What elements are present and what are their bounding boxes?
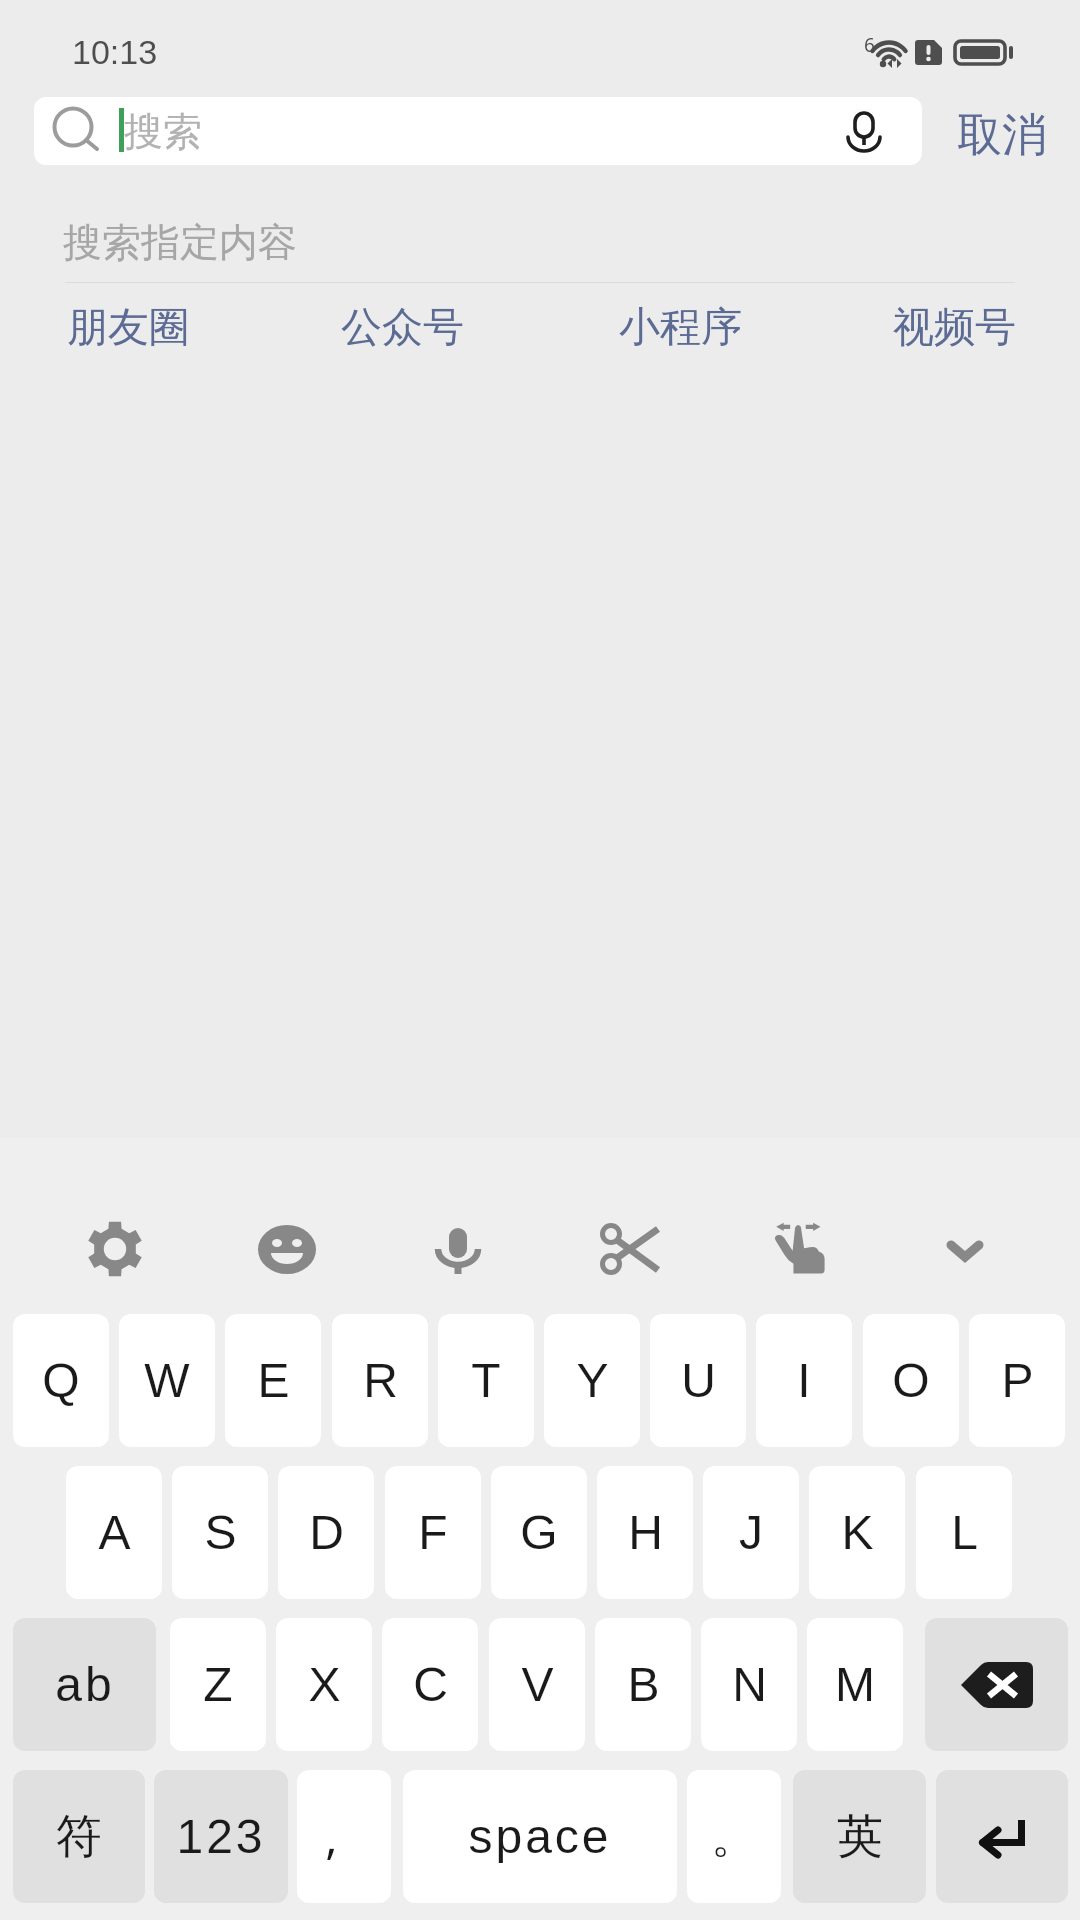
button[interactable]: Enter	[936, 1770, 1068, 1903]
button[interactable]: P	[969, 1314, 1065, 1447]
button[interactable]: C	[382, 1618, 478, 1751]
staticText: 123	[176, 1810, 266, 1864]
staticText: J	[739, 1506, 763, 1560]
button[interactable]: N	[701, 1618, 797, 1751]
staticText: S	[204, 1506, 237, 1560]
staticText: A	[98, 1506, 131, 1560]
button[interactable]: F	[385, 1466, 481, 1599]
button[interactable]: 视频号	[864, 296, 1044, 360]
staticText: G	[520, 1506, 558, 1560]
staticText: 朋友圈	[67, 302, 190, 354]
button[interactable]: B	[595, 1618, 691, 1751]
staticText: V	[521, 1658, 554, 1712]
button[interactable]: Y	[544, 1314, 640, 1447]
staticText: Q	[42, 1354, 80, 1408]
staticText: 6	[864, 32, 875, 58]
staticText: K	[841, 1506, 874, 1560]
button[interactable]: K	[809, 1466, 905, 1599]
staticText: B	[627, 1658, 660, 1712]
button[interactable]: W	[119, 1314, 215, 1447]
staticText: ab	[55, 1658, 115, 1712]
button[interactable]: Q	[13, 1314, 109, 1447]
staticText: O	[892, 1354, 930, 1408]
button[interactable]: ab	[13, 1618, 156, 1751]
button[interactable]: A	[66, 1466, 162, 1599]
button[interactable]: D	[278, 1466, 374, 1599]
staticText: Z	[203, 1658, 233, 1712]
button[interactable]: O	[863, 1314, 959, 1447]
staticText: W	[144, 1354, 190, 1408]
staticText: 符	[56, 1808, 102, 1866]
staticText: M	[835, 1658, 875, 1712]
staticText: 搜索指定内容	[63, 218, 297, 267]
other: Delete	[960, 1662, 1033, 1708]
staticText: E	[257, 1354, 290, 1408]
button[interactable]: space	[403, 1770, 677, 1903]
staticText: 。	[711, 1808, 757, 1866]
button[interactable]: 朋友圈	[38, 296, 218, 360]
staticText: D	[309, 1506, 344, 1560]
staticText: F	[418, 1506, 448, 1560]
staticText: X	[308, 1658, 341, 1712]
button[interactable]: 小程序	[590, 296, 770, 360]
staticText: space	[468, 1810, 612, 1864]
button[interactable]: E	[225, 1314, 321, 1447]
staticText: 10:13	[72, 33, 158, 71]
staticText: Y	[576, 1354, 609, 1408]
button[interactable]: X	[276, 1618, 372, 1751]
button[interactable]: R	[332, 1314, 428, 1447]
staticText: N	[732, 1658, 767, 1712]
button[interactable]: 123	[154, 1770, 288, 1903]
staticText: L	[951, 1506, 978, 1560]
button[interactable]: V	[489, 1618, 585, 1751]
staticText: ,	[325, 1805, 338, 1868]
button[interactable]: S	[172, 1466, 268, 1599]
staticText: T	[471, 1354, 501, 1408]
button[interactable]: Settings	[67, 1201, 163, 1297]
button[interactable]: Clipboard	[581, 1201, 677, 1297]
staticText: C	[413, 1658, 448, 1712]
button[interactable]: Handwriting	[752, 1201, 848, 1297]
button[interactable]: G	[491, 1466, 587, 1599]
button[interactable]: L	[916, 1466, 1012, 1599]
staticText: U	[681, 1354, 716, 1408]
staticText: 视频号	[893, 302, 1016, 354]
button[interactable]: 取消	[957, 107, 1047, 164]
staticText: 小程序	[619, 302, 742, 354]
button[interactable]: Delete	[925, 1618, 1068, 1751]
button[interactable]: M	[807, 1618, 903, 1751]
button[interactable]: 符	[13, 1770, 145, 1903]
staticText: H	[628, 1506, 663, 1560]
button[interactable]: T	[438, 1314, 534, 1447]
staticText: 公众号	[341, 302, 464, 354]
staticText: I	[797, 1354, 811, 1408]
button[interactable]: I	[756, 1314, 852, 1447]
staticText: P	[1001, 1354, 1034, 1408]
button[interactable]: 英	[793, 1770, 926, 1903]
button[interactable]: U	[650, 1314, 746, 1447]
button[interactable]: 搜索	[34, 97, 922, 165]
button[interactable]: Emoji	[239, 1201, 335, 1297]
button[interactable]: 公众号	[312, 296, 492, 360]
other: Voice search	[847, 111, 889, 153]
button[interactable]: H	[597, 1466, 693, 1599]
button[interactable]: Hide keyboard	[917, 1201, 1013, 1297]
staticText: R	[363, 1354, 398, 1408]
button[interactable]: 。	[687, 1770, 781, 1903]
button[interactable]: ,	[297, 1770, 391, 1903]
button[interactable]: Voice input	[410, 1201, 506, 1297]
button[interactable]: Z	[170, 1618, 266, 1751]
staticText: 搜索	[124, 107, 202, 156]
other: Enter	[979, 1817, 1025, 1856]
staticText: 英	[837, 1808, 883, 1866]
button[interactable]: J	[703, 1466, 799, 1599]
